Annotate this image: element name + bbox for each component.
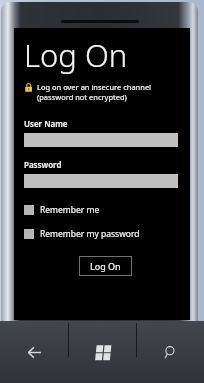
button[interactable]: Log On xyxy=(79,256,132,276)
staticText: Remember my password xyxy=(40,228,140,240)
staticText: Log On xyxy=(24,34,128,76)
staticText: User Name xyxy=(24,118,68,129)
staticText: Log on over an insecure channel (passwor… xyxy=(37,82,178,102)
button[interactable]: Search xyxy=(137,321,204,383)
button[interactable]: Start xyxy=(69,321,136,383)
staticText: Remember me xyxy=(40,204,100,216)
staticText: Password xyxy=(24,159,62,170)
button[interactable]: Back xyxy=(0,321,68,383)
button[interactable]: Remember my password xyxy=(24,228,178,240)
button[interactable]: Remember me xyxy=(24,204,178,216)
staticText: Log On xyxy=(90,260,121,272)
